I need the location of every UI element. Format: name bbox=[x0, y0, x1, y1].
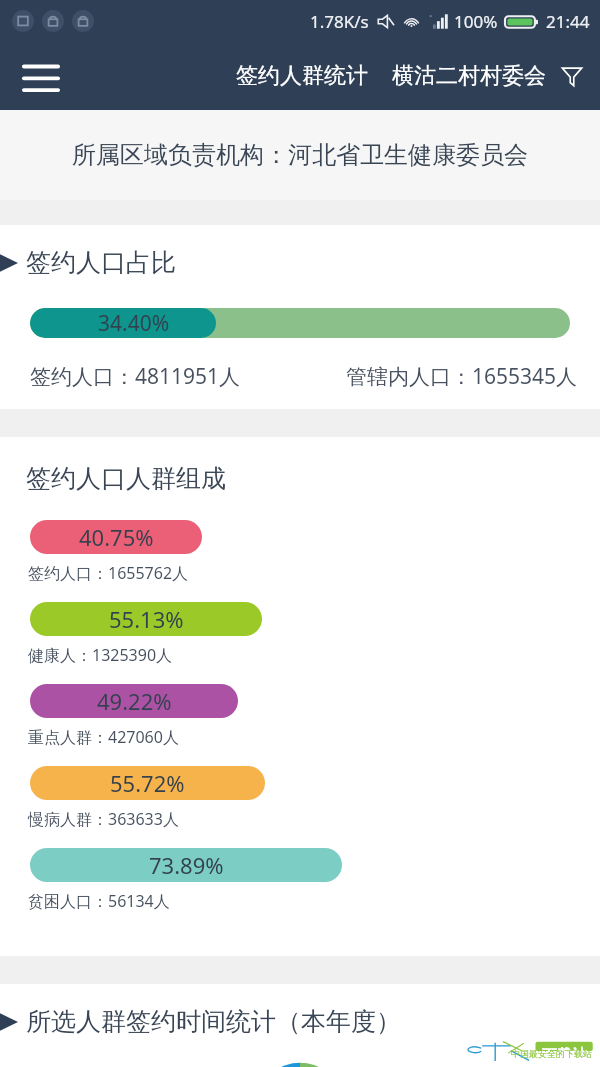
staticText: 21:44 bbox=[546, 10, 590, 33]
staticText: 横沽二村村委会 bbox=[392, 62, 546, 90]
button[interactable]: 签约人群统计 bbox=[232, 62, 372, 90]
button[interactable]: Menu bbox=[14, 49, 68, 103]
staticText: 40.75% bbox=[79, 522, 154, 552]
staticText: 下载站 bbox=[542, 1046, 587, 1063]
staticText: 55.13% bbox=[109, 604, 184, 634]
staticText: 签约人口：4811951人 bbox=[30, 362, 241, 391]
staticText: 所属区域负责机构：河北省卫生健康委员会 bbox=[72, 140, 528, 170]
button[interactable]: 34.40% bbox=[30, 308, 570, 338]
staticText: 贫困人口：56134人 bbox=[28, 890, 170, 912]
staticText: 73.89% bbox=[149, 850, 224, 880]
staticText: 管辖内人口：1655345人 bbox=[346, 362, 578, 391]
staticText: 100% bbox=[454, 10, 498, 33]
button[interactable]: 73.89% bbox=[0, 848, 600, 912]
button[interactable]: 横沽二村村委会 bbox=[390, 62, 548, 90]
button[interactable]: 49.22% bbox=[0, 684, 600, 748]
staticText: 55.72% bbox=[110, 768, 185, 798]
button[interactable]: Filter bbox=[552, 56, 592, 96]
button[interactable]: 40.75% bbox=[0, 520, 600, 584]
staticText: 重点人群：427060人 bbox=[28, 726, 179, 748]
staticText: 所选人群签约时间统计（本年度） bbox=[26, 1006, 401, 1037]
staticText: 中国最安全的下载站 bbox=[511, 1048, 592, 1059]
staticText: 健康人：1325390人 bbox=[28, 644, 173, 666]
staticText: 49.22% bbox=[97, 686, 172, 716]
staticText: 签约人口：1655762人 bbox=[28, 562, 189, 584]
staticText: 签约人口人群组成 bbox=[26, 463, 226, 494]
staticText: 34.40% bbox=[98, 309, 170, 338]
staticText: 1.78K/s bbox=[310, 10, 369, 33]
staticText: 签约人群统计 bbox=[236, 62, 368, 90]
staticText: 慢病人群：363633人 bbox=[28, 808, 179, 830]
staticText: 签约人口占比 bbox=[26, 247, 176, 278]
button[interactable]: 55.72% bbox=[0, 766, 600, 830]
button[interactable]: 55.13% bbox=[0, 602, 600, 666]
